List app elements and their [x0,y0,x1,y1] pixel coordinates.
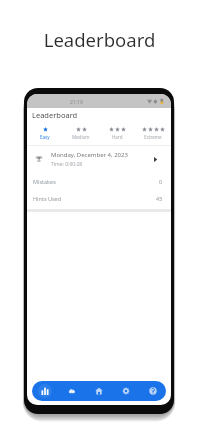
staticText: Hints Used [33,195,62,202]
button[interactable]: Help [139,381,166,401]
staticText: 21:19 [70,99,83,106]
button[interactable]: Monday, December 4, 2023 [27,146,171,173]
staticText: Leaderboard [0,27,199,52]
button[interactable]: Hard [99,122,135,145]
staticText: 45 [156,195,163,202]
staticText: Extreme [144,134,162,140]
button[interactable]: Saved [58,381,85,401]
staticText: Hard [112,134,123,140]
staticText: 0 [159,178,163,185]
button[interactable]: Leaderboard [32,381,58,401]
staticText: Time: 0:00:28 [51,161,83,168]
staticText: Monday, December 4, 2023 [51,151,128,159]
button[interactable]: Hints Used [27,190,171,207]
button[interactable]: Home [85,381,112,401]
staticText: Leaderboard [32,110,78,120]
button[interactable]: Extreme [135,122,171,145]
staticText: Mistakes [33,178,56,185]
button[interactable]: Settings [112,381,139,401]
button[interactable]: Medium [63,122,99,145]
staticText: Medium [72,134,90,140]
button[interactable]: Expand [150,154,161,165]
button[interactable]: Mistakes [27,173,171,190]
button[interactable]: Easy [27,122,63,145]
staticText: Easy [40,134,50,140]
